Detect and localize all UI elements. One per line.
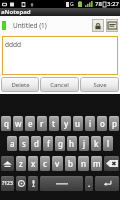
- staticText: i: [89, 118, 92, 129]
- staticText: aNotepad: [1, 8, 31, 16]
- button[interactable]: v: [52, 156, 63, 171]
- staticText: u: [75, 118, 81, 129]
- staticText: o: [100, 118, 105, 129]
- staticText: n: [81, 158, 87, 169]
- staticText: Cancel: [50, 81, 69, 89]
- staticText: k: [94, 138, 99, 149]
- button[interactable]: f: [43, 136, 53, 151]
- button[interactable]: m: [91, 156, 102, 171]
- staticText: y: [64, 118, 69, 129]
- button[interactable]: Voice input: [28, 176, 38, 191]
- staticText: s: [22, 138, 26, 149]
- staticText: c: [43, 158, 47, 169]
- button[interactable]: e: [25, 116, 35, 131]
- button[interactable]: d: [31, 136, 41, 151]
- button[interactable]: .: [85, 176, 93, 191]
- button[interactable]: b: [65, 156, 76, 171]
- button[interactable]: c: [40, 156, 50, 171]
- staticText: dddd: [5, 40, 21, 49]
- staticText: w: [15, 118, 22, 129]
- button[interactable]: w: [13, 116, 23, 131]
- button[interactable]: p: [109, 116, 119, 131]
- staticText: g: [58, 138, 63, 149]
- staticText: q: [4, 118, 9, 129]
- button[interactable]: q: [1, 116, 11, 131]
- button[interactable]: Space: [40, 176, 83, 191]
- button[interactable]: Shift: [1, 156, 14, 171]
- button[interactable]: y: [61, 116, 71, 131]
- staticText: p: [112, 118, 117, 129]
- button[interactable]: Save: [80, 77, 119, 92]
- button[interactable]: Delete: [1, 77, 39, 92]
- staticText: r: [40, 118, 44, 129]
- button[interactable]: k: [91, 136, 101, 151]
- staticText: 3:27: [107, 0, 119, 8]
- button[interactable]: o: [97, 116, 107, 131]
- staticText: Untitled (1): [13, 21, 47, 30]
- button[interactable]: l: [103, 136, 113, 151]
- staticText: v: [55, 158, 60, 169]
- staticText: a: [10, 138, 15, 149]
- staticText: Save: [93, 81, 107, 89]
- button[interactable]: a: [7, 136, 17, 151]
- staticText: f: [47, 138, 50, 149]
- button[interactable]: i: [85, 116, 95, 131]
- button[interactable]: Enter: [95, 176, 119, 191]
- staticText: Delete: [11, 81, 30, 89]
- staticText: x: [31, 158, 36, 169]
- button[interactable]: dddd: [2, 36, 118, 75]
- button[interactable]: Cancel: [40, 77, 79, 92]
- button[interactable]: u: [73, 116, 83, 131]
- staticText: e: [28, 118, 33, 129]
- button[interactable]: x: [28, 156, 38, 171]
- staticText: j: [83, 138, 86, 149]
- button[interactable]: n: [78, 156, 89, 171]
- button[interactable]: Lock: [92, 19, 104, 32]
- staticText: t: [52, 118, 56, 129]
- button[interactable]: z: [16, 156, 26, 171]
- staticText: 78: [95, 0, 102, 8]
- staticText: b: [68, 158, 73, 169]
- staticText: z: [19, 158, 23, 169]
- button[interactable]: h: [67, 136, 77, 151]
- button[interactable]: ?123: [1, 176, 14, 191]
- button[interactable]: Notes: [106, 19, 118, 32]
- staticText: h: [69, 138, 75, 149]
- staticText: .: [88, 178, 91, 189]
- button[interactable]: s: [19, 136, 29, 151]
- button[interactable]: t: [49, 116, 59, 131]
- button[interactable]: g: [55, 136, 65, 151]
- button[interactable]: Backspace: [104, 156, 119, 171]
- staticText: G: [70, 1, 74, 8]
- staticText: ?123: [2, 180, 13, 187]
- button[interactable]: r: [37, 116, 47, 131]
- button[interactable]: Settings: [16, 176, 26, 191]
- staticText: m: [93, 158, 101, 169]
- staticText: l: [107, 138, 110, 149]
- staticText: d: [34, 138, 39, 149]
- button[interactable]: j: [79, 136, 89, 151]
